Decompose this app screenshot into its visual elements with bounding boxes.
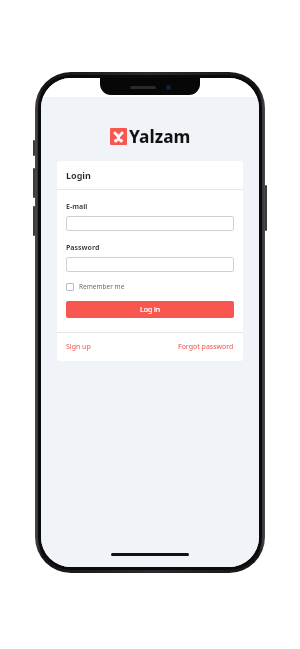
button[interactable]: Log in [66, 301, 234, 318]
staticText: Remember me [79, 282, 125, 291]
staticText: Password [66, 243, 100, 253]
staticText: Yalzam [129, 125, 191, 148]
button[interactable]: Forgot password [178, 342, 234, 352]
button[interactable]: Sign up [66, 342, 91, 352]
staticText: Log in [140, 305, 161, 315]
staticText: E-mail [66, 202, 88, 212]
button[interactable]: Remember me [66, 282, 125, 291]
button[interactable] [66, 216, 234, 231]
staticText: Login [66, 169, 91, 181]
staticText: Forgot password [178, 342, 234, 352]
button[interactable] [66, 257, 234, 272]
staticText: Sign up [66, 342, 91, 352]
